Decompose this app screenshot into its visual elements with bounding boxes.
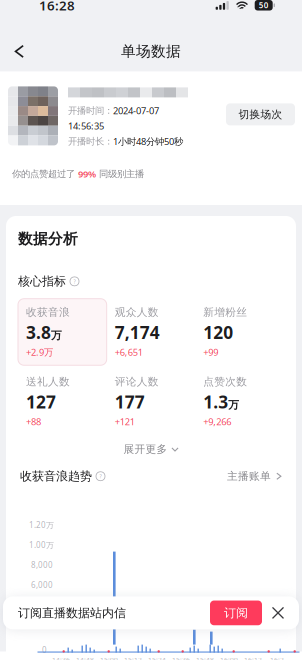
button[interactable]: 订阅 <box>210 600 262 625</box>
staticText: 16:00 <box>220 656 238 660</box>
staticText: 评论人数 <box>115 375 159 388</box>
staticText: 16:28 <box>39 0 75 14</box>
staticText: 127 <box>26 390 56 413</box>
staticText: 点赞次数 <box>203 375 247 388</box>
staticText: 数据分析 <box>18 230 78 248</box>
staticText: 8,000 <box>31 560 53 570</box>
staticText: 你的点赞超过了 <box>12 168 78 179</box>
staticText: 1小时48分钟50秒 <box>113 135 183 148</box>
button[interactable]: 主播账单 <box>227 470 282 483</box>
staticText: 万 <box>51 329 62 342</box>
staticText: 14:48 <box>76 656 94 660</box>
staticText: 订阅 <box>224 605 248 620</box>
staticText: 新增粉丝 <box>203 306 247 319</box>
staticText: 1.00万 <box>29 540 54 550</box>
staticText: 15:00 <box>100 656 118 660</box>
staticText: +99 <box>203 346 218 358</box>
button[interactable]: Back <box>0 31 40 71</box>
staticText: 2024-07-07 <box>113 104 159 117</box>
staticText: +6,651 <box>115 346 143 358</box>
staticText: 6,000 <box>31 580 53 590</box>
staticText: 订阅直播数据站内信 <box>18 605 126 620</box>
staticText: 50 <box>259 0 269 10</box>
staticText: 0 <box>42 645 47 655</box>
staticText: 1.3 <box>203 390 228 413</box>
staticText: 3.8 <box>26 321 51 344</box>
staticText: 15:12 <box>124 656 142 660</box>
staticText: 16:12 <box>244 656 262 660</box>
staticText: 14:56:35 <box>68 120 104 132</box>
button[interactable]: 展开更多 <box>18 437 284 462</box>
staticText: 展开更多 <box>123 443 167 456</box>
staticText: 切换场次 <box>238 108 282 121</box>
staticText: +2.9万 <box>26 346 53 358</box>
staticText: 收获音浪 <box>26 306 70 319</box>
staticText: +9,266 <box>203 415 231 428</box>
staticText: ? <box>99 473 101 480</box>
staticText: 开播时长： <box>68 136 113 147</box>
staticText: 主播账单 <box>227 470 271 483</box>
staticText: 万 <box>228 398 239 412</box>
staticText: +121 <box>115 415 135 428</box>
staticText: 观众人数 <box>115 306 159 319</box>
button[interactable]: Close <box>262 597 294 629</box>
staticText: 送礼人数 <box>26 375 70 388</box>
staticText: 16:2 <box>270 656 284 660</box>
staticText: 收获音浪趋势 <box>20 469 92 484</box>
staticText: 177 <box>115 390 145 413</box>
staticText: 1.20万 <box>29 520 54 530</box>
staticText: 15:36 <box>172 656 190 660</box>
button[interactable]: 切换场次 <box>226 103 295 125</box>
staticText: 15:24 <box>148 656 166 660</box>
staticText: 7,174 <box>115 321 160 344</box>
staticText: ? <box>73 278 75 285</box>
staticText: 开播时间： <box>68 105 113 116</box>
staticText: 同级别主播 <box>96 168 144 179</box>
staticText: +88 <box>26 415 41 428</box>
staticText: 15:48 <box>196 656 214 660</box>
staticText: 单场数据 <box>121 42 181 60</box>
staticText: 120 <box>203 321 233 344</box>
staticText: 14:36 <box>52 656 70 660</box>
staticText: 核心指标 <box>18 274 66 289</box>
staticText: 99% <box>78 168 96 180</box>
